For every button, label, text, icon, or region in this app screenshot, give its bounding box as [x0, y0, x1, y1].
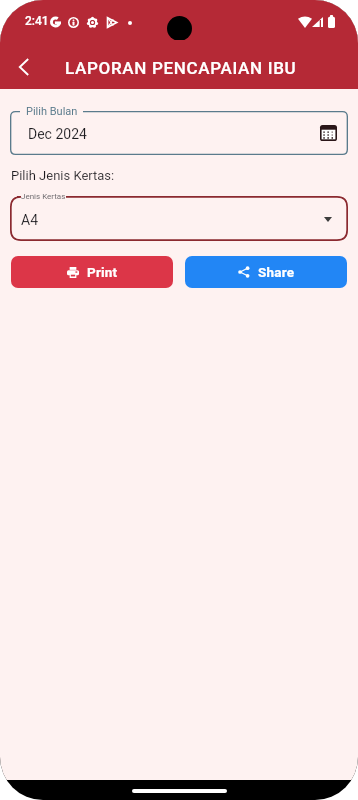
staticText: A4 — [21, 212, 39, 228]
staticText: Pilih Jenis Kertas: — [11, 168, 115, 183]
staticText: 2:41 — [25, 14, 49, 28]
button[interactable]: Dec 2024 — [10, 111, 348, 155]
button[interactable]: Back — [4, 47, 44, 87]
button[interactable]: A4 — [10, 196, 348, 241]
button[interactable]: Print — [11, 256, 173, 288]
staticText: Print — [87, 264, 118, 280]
staticText: Share — [258, 264, 295, 280]
staticText: Dec 2024 — [28, 126, 87, 142]
staticText: Pilih Bulan — [26, 105, 78, 118]
button[interactable]: Share — [185, 256, 347, 288]
staticText: Jenis Kertas — [21, 192, 66, 201]
staticText: LAPORAN PENCAPAIAN IBU — [65, 58, 297, 78]
